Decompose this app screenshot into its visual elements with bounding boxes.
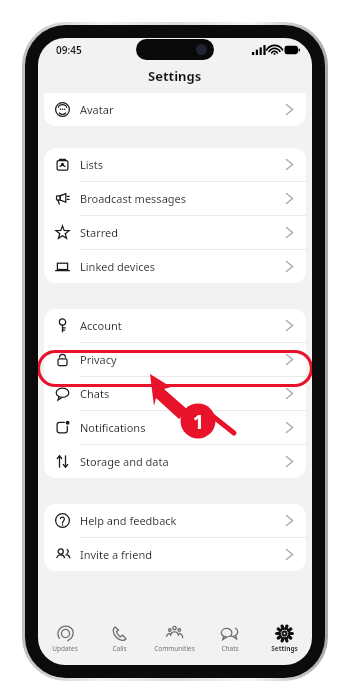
staticText: Help and feedback [80,513,286,528]
button[interactable]: Calls [92,619,147,659]
staticText: Chats [80,386,286,401]
staticText: Chats [221,644,239,653]
staticText: Notifications [80,420,286,435]
button[interactable]: Invite a friend [44,538,306,571]
button[interactable]: Settings [257,619,312,659]
button[interactable]: Privacy [44,343,306,377]
staticText: Settings [271,644,298,653]
staticText: 09:45 [56,43,82,57]
button[interactable]: Avatar [44,93,306,126]
button[interactable]: Help and feedback [44,504,306,538]
staticText: Lists [80,157,286,172]
button[interactable]: Starred [44,216,306,250]
button[interactable]: Account [44,309,306,343]
button[interactable]: Broadcast messages [44,182,306,216]
button[interactable]: Communities [147,619,202,659]
button[interactable]: Chats [202,619,257,659]
staticText: Communities [154,644,195,653]
button[interactable]: Notifications [44,411,306,445]
staticText: Settings [148,67,202,85]
staticText: Privacy [80,352,286,367]
button[interactable]: Linked devices [44,250,306,283]
staticText: Linked devices [80,259,286,274]
staticText: Calls [112,644,127,653]
button[interactable]: Chats [44,377,306,411]
button[interactable]: Storage and data [44,445,306,478]
button[interactable]: Lists [44,148,306,182]
staticText: Account [80,318,286,333]
staticText: Broadcast messages [80,191,286,206]
staticText: Avatar [80,102,286,117]
staticText: Storage and data [80,454,286,469]
staticText: 1 [193,409,204,435]
staticText: Invite a friend [80,547,286,562]
staticText: Starred [80,225,286,240]
staticText: Updates [52,644,78,653]
button[interactable]: Updates [38,619,92,659]
